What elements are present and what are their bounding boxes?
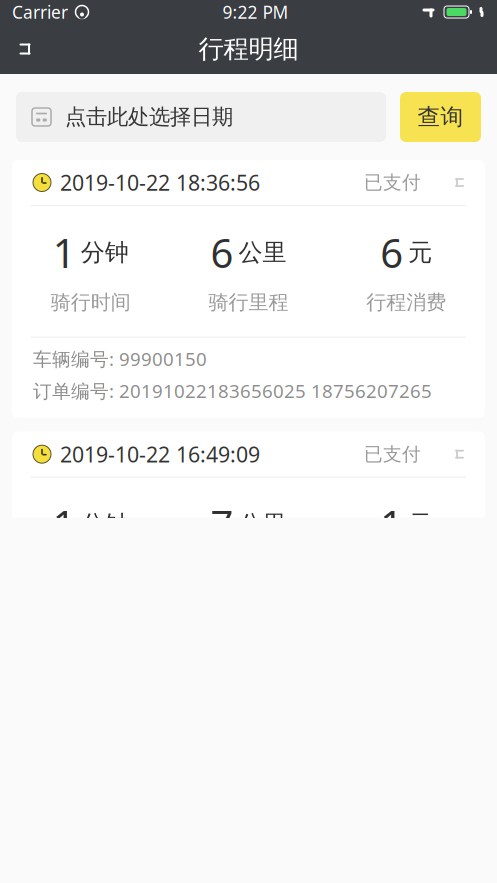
button[interactable]: Back [0,24,56,74]
staticText: 2019-10-22 16:49:09 [60,440,260,468]
staticText: 1 [53,226,76,279]
staticText: 6 [210,226,233,279]
staticText: 公里 [238,238,286,267]
staticText: 1 [53,498,76,551]
staticText: 2019-10-22 18:36:56 [60,168,260,197]
button[interactable]: 2019-10-22 18:36:56 [0,160,497,418]
staticText: 骑行时间 [51,290,131,315]
staticText: 行程消费 [366,290,446,315]
staticText: 元 [408,238,432,267]
staticText: Carrier [12,0,68,23]
button[interactable]: 点击此处选择日期 [16,92,386,142]
staticText: 7 [210,498,233,551]
staticText: 元 [408,509,432,539]
staticText: 点击此处选择日期 [65,104,233,130]
staticText: 已支付 [364,443,421,466]
staticText: 1 [380,498,403,551]
staticText: 订单编号: 20191022183656025 18756207265 [33,378,432,403]
staticText: 已支付 [364,171,421,194]
staticText: 分钟 [81,509,129,539]
staticText: 公里 [238,509,286,539]
staticText: 分钟 [81,238,129,267]
button[interactable]: 查询 [400,92,481,142]
button[interactable]: 2019-10-22 16:49:09 [0,432,497,689]
staticText: 6 [380,226,403,279]
staticText: 行程明细 [198,33,298,64]
staticText: 9:22 PM [222,0,288,23]
staticText: 车辆编号: 99900150 [33,346,207,371]
staticText: 骑行里程 [208,290,288,315]
staticText: 查询 [417,103,463,131]
